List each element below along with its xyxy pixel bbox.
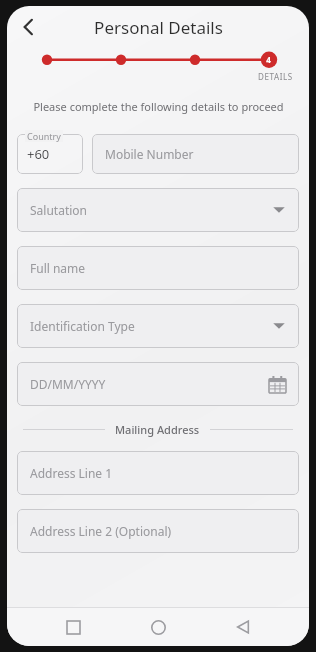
button[interactable]: Mobile Number (92, 134, 299, 174)
staticText: Address Line 1 (30, 465, 113, 481)
button[interactable]: Salutation (17, 188, 299, 232)
staticText: Mobile Number (105, 146, 194, 162)
staticText: Personal Details (94, 16, 223, 39)
button[interactable]: Recent apps (54, 608, 92, 646)
button[interactable]: +60 (17, 134, 83, 174)
button[interactable]: DD/MM/YYYY (17, 362, 299, 406)
button[interactable]: Home (139, 608, 177, 646)
button[interactable]: Back (224, 608, 262, 646)
button[interactable]: Back (11, 9, 47, 45)
staticText: Mailing Address (115, 422, 200, 437)
staticText: 4 (266, 54, 271, 65)
staticText: Full name (30, 260, 86, 276)
staticText: Salutation (30, 202, 88, 218)
button[interactable]: Address Line 2 (Optional) (17, 509, 299, 553)
staticText: Please complete the following details to… (33, 99, 284, 114)
staticText: DETAILS (258, 71, 293, 82)
button[interactable]: Identification Type (17, 304, 299, 348)
staticText: Address Line 2 (Optional) (30, 523, 172, 539)
button[interactable]: Address Line 1 (17, 451, 299, 495)
button[interactable]: Full name (17, 246, 299, 290)
staticText: +60 (27, 145, 50, 163)
staticText: Country (27, 130, 61, 142)
staticText: Identification Type (30, 318, 135, 334)
staticText: DD/MM/YYYY (30, 376, 106, 392)
